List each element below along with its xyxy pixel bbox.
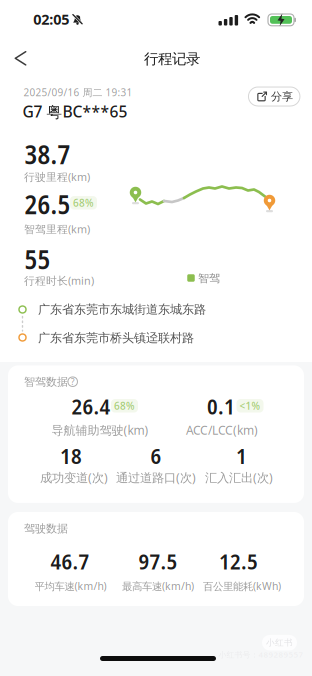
button[interactable]: 智驾数据说明 <box>67 376 79 388</box>
staticText: 广东省东莞市东城街道东城东路 <box>38 302 206 317</box>
staticText: 02:05 <box>33 10 69 29</box>
staticText: 68% <box>73 196 94 209</box>
staticText: 18 <box>60 441 82 470</box>
staticText: 97.5 <box>138 546 177 576</box>
staticText: 小红书 <box>266 637 293 648</box>
staticText: 智驾 <box>198 271 220 285</box>
staticText: 46.7 <box>50 546 89 576</box>
staticText: 68% <box>114 399 135 412</box>
staticText: 1 <box>236 441 247 470</box>
staticText: 成功变道(次) <box>40 469 108 486</box>
staticText: 12.5 <box>219 546 258 576</box>
button[interactable]: 分享 <box>248 87 300 106</box>
staticText: 智驾里程(km) <box>24 222 90 236</box>
staticText: 平均车速(km/h) <box>34 579 106 593</box>
button[interactable]: 返回 <box>9 47 31 69</box>
staticText: ACC/LCC(km) <box>186 422 258 438</box>
staticText: G7 粤BC***65 <box>22 101 127 122</box>
staticText: 百公里能耗(kWh) <box>203 579 281 593</box>
staticText: 导航辅助驾驶(km) <box>51 422 148 438</box>
staticText: 广东省东莞市桥头镇迳联村路 <box>38 330 194 345</box>
staticText: 行驶里程(km) <box>24 169 90 184</box>
staticText: 55 <box>24 242 50 276</box>
staticText: 智驾数据 <box>24 375 68 388</box>
staticText: 分享 <box>271 90 293 103</box>
staticText: 最高车速(km/h) <box>122 579 194 593</box>
staticText: 0.1 <box>207 391 235 421</box>
staticText: 38.7 <box>24 137 70 171</box>
staticText: ? <box>71 376 75 387</box>
staticText: 汇入汇出(次) <box>205 469 273 486</box>
staticText: 6 <box>150 441 161 470</box>
staticText: 通过道路口(次) <box>116 469 196 486</box>
staticText: 26.4 <box>71 391 110 421</box>
staticText: 行程记录 <box>144 50 200 68</box>
staticText: 行程时长(min) <box>24 273 94 288</box>
staticText: 26.5 <box>24 187 70 221</box>
staticText: 驾驶数据 <box>24 522 68 535</box>
staticText: <1% <box>239 399 260 412</box>
staticText: 2025/09/16 周二 19:31 <box>23 86 132 99</box>
